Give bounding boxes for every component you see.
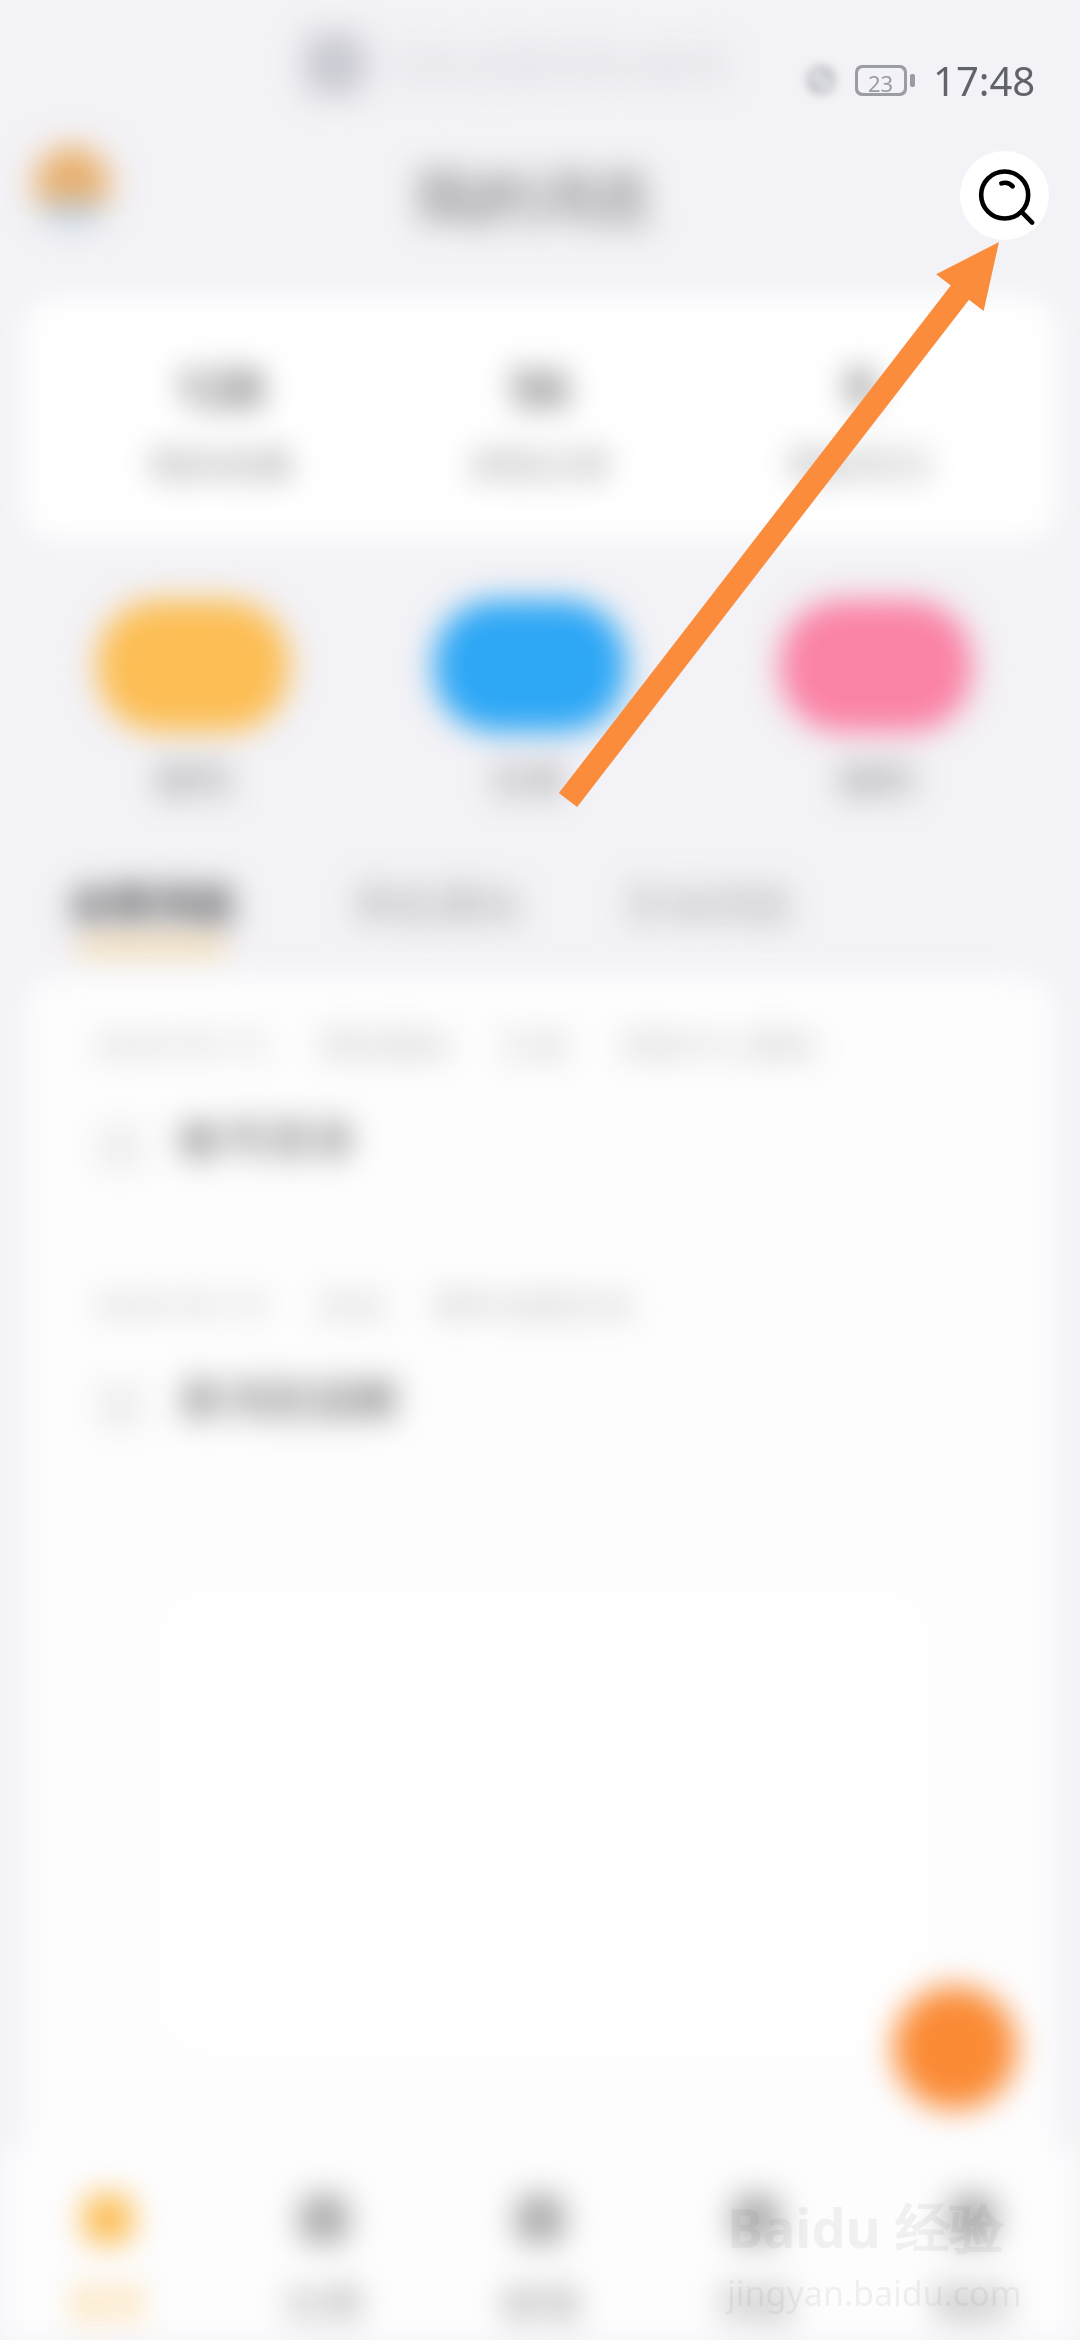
button[interactable]: 互动消息 <box>625 879 793 942</box>
staticText: 新消息提醒 <box>180 1372 400 1427</box>
button[interactable]: Search <box>960 151 1049 240</box>
staticText: 128 <box>175 351 265 422</box>
staticText: 分类 <box>284 2278 364 2328</box>
staticText: 首页 <box>68 2278 148 2328</box>
staticText: 互动消息 <box>625 879 793 932</box>
staticText: 23 <box>868 68 894 93</box>
staticText: 浏览记录 <box>468 442 612 487</box>
button[interactable]: 签到 <box>97 600 289 804</box>
staticText: 签到 <box>155 756 231 804</box>
button[interactable]: Profile <box>26 134 118 226</box>
staticText: 任务 <box>492 756 568 804</box>
staticText: 账号登录 <box>180 1113 356 1168</box>
button[interactable]: 56 <box>380 297 700 540</box>
button[interactable]: 发现 <box>432 2150 648 2340</box>
staticText: 福利 <box>838 756 914 804</box>
button[interactable] <box>24 980 1056 1210</box>
button[interactable]: 首页 <box>0 2150 216 2340</box>
staticText: 2024-05-10 活动 限时优惠活动 <box>94 1282 634 1327</box>
staticText: jingyan.baidu.com <box>727 2270 1022 2316</box>
staticText: 我的收藏 <box>148 442 292 487</box>
button[interactable]: 消息 <box>648 2150 864 2340</box>
button[interactable]: 福利 <box>780 600 972 804</box>
staticText: 我的消息 <box>414 160 654 236</box>
button[interactable] <box>24 1240 1056 1470</box>
button[interactable]: 系统通知 <box>352 879 520 942</box>
staticText: 发现 <box>500 2278 580 2328</box>
staticText: 17:48 <box>933 53 1036 107</box>
staticText: 全部消息 <box>68 879 236 932</box>
button[interactable]: 128 <box>60 297 380 540</box>
button[interactable]: 9 <box>700 297 1020 540</box>
staticText: 我的关注 <box>788 442 932 487</box>
staticText: 56 <box>510 351 570 422</box>
button[interactable]: 分类 <box>216 2150 432 2340</box>
staticText: 2024-05-12 系统通知 已读 消息中心通知 <box>94 1022 817 1067</box>
staticText: Baidu 经验 <box>727 2190 1003 2264</box>
button[interactable]: 任务 <box>434 600 626 804</box>
staticText: 消息 <box>716 2278 796 2328</box>
staticText: 9 <box>845 351 875 422</box>
staticText: 我的 <box>932 2278 1012 2328</box>
button[interactable]: 全部消息 <box>68 879 236 951</box>
staticText: 系统通知 <box>352 879 520 932</box>
button[interactable]: Compose <box>893 1986 1017 2110</box>
button[interactable]: 我的 <box>864 2150 1080 2340</box>
